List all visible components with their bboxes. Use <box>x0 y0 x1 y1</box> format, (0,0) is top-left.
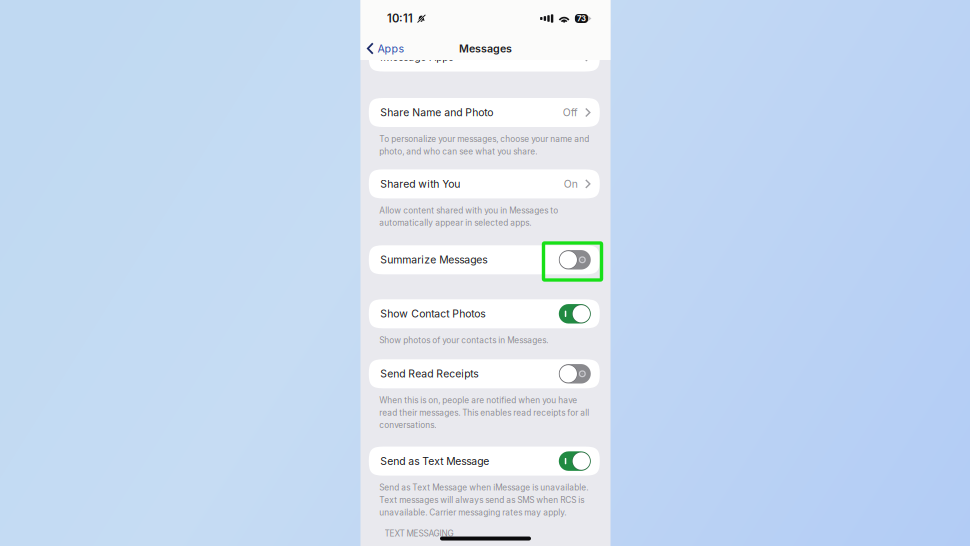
staticText: Allow content shared with you in Message… <box>379 205 558 228</box>
button[interactable]: Shared with You <box>369 169 600 198</box>
button[interactable]: Show Contact Photos <box>369 299 600 328</box>
button[interactable]: Send as Text Message <box>369 447 600 476</box>
button[interactable]: Apps <box>362 39 409 58</box>
staticText: 73 <box>577 14 586 23</box>
staticText: To personalize your messages, choose you… <box>379 134 589 156</box>
staticText: Shared with You <box>380 178 460 190</box>
staticText: Send as Text Message when iMessage is un… <box>379 483 588 517</box>
staticText: Messages <box>459 42 512 55</box>
staticText: Off <box>563 106 578 119</box>
button[interactable]: iMessage Apps <box>369 42 600 71</box>
staticText: Send Read Receipts <box>380 367 478 380</box>
button[interactable]: Summarize Messages <box>369 245 600 274</box>
staticText: TEXT MESSAGING <box>385 528 454 538</box>
button[interactable]: Share Name and Photo <box>369 98 600 127</box>
staticText: Send as Text Message <box>380 455 489 467</box>
staticText: Summarize Messages <box>380 253 487 266</box>
staticText: Show photos of your contacts in Messages… <box>379 335 548 345</box>
staticText: iMessage Apps <box>380 51 453 63</box>
staticText: Apps <box>378 42 405 55</box>
button[interactable]: Send Read Receipts <box>369 359 600 388</box>
staticText: When this is on, people are notified whe… <box>379 395 589 430</box>
staticText: 10:11 <box>387 12 413 25</box>
staticText: Show Contact Photos <box>380 307 485 320</box>
staticText: Share Name and Photo <box>380 106 493 119</box>
staticText: On <box>564 178 578 190</box>
